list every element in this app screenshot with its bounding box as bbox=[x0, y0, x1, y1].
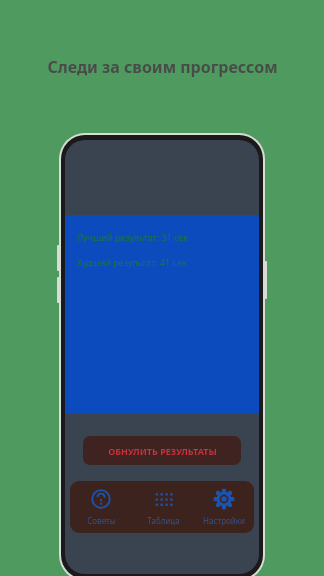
other: Советы bbox=[91, 489, 111, 509]
button[interactable]: Настройки bbox=[194, 488, 254, 526]
staticText: ОБНУЛИТЬ РЕЗУЛЬТАТЫ bbox=[108, 445, 217, 457]
staticText: Лучший результат: 31 сек bbox=[77, 231, 188, 243]
staticText: Следи за своим прогрессом bbox=[47, 56, 278, 78]
other: Таблица bbox=[153, 489, 173, 509]
button[interactable]: Советы bbox=[70, 488, 132, 526]
staticText: Настройки bbox=[203, 515, 245, 526]
staticText: Таблица bbox=[147, 515, 180, 526]
staticText: Худший результат: 41 сек bbox=[77, 256, 187, 268]
button[interactable]: Таблица bbox=[132, 488, 194, 526]
staticText: Советы bbox=[87, 515, 116, 526]
other: Настройки bbox=[214, 489, 234, 509]
button[interactable]: ОБНУЛИТЬ РЕЗУЛЬТАТЫ bbox=[83, 436, 241, 465]
